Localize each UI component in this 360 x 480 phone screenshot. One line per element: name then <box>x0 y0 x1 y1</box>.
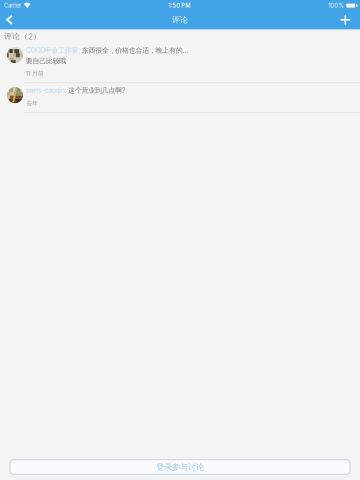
staticText: 1:50 PM <box>168 2 190 9</box>
staticText: 100% <box>328 2 343 9</box>
staticText: 这个营业到几点啊? <box>68 86 126 95</box>
button[interactable]: Back <box>0 10 34 30</box>
staticText: 去年 <box>26 99 38 107</box>
button[interactable]: paris-caoqin: <box>0 83 360 112</box>
staticText: COCO甲妆工作室: <box>26 46 82 55</box>
staticText: 东西很全，价格也合适，晚上有的店面营业到很晚，MCM包包比免税店便宜一些，其它的 <box>82 46 188 55</box>
staticText: 评论（2） <box>4 31 41 41</box>
staticText: 要自己比较哦 <box>26 56 66 65</box>
staticText: 11 月前 <box>26 70 44 77</box>
button[interactable]: Add comment <box>322 10 360 30</box>
staticText: 登录参与讨论 <box>156 462 204 472</box>
button[interactable]: COCO甲妆工作室: <box>0 43 360 82</box>
staticText: paris-caoqin: <box>26 86 68 94</box>
staticText: 评论 <box>172 15 188 25</box>
staticText: Carrier <box>4 2 21 9</box>
button[interactable]: 登录参与讨论 <box>10 460 350 474</box>
